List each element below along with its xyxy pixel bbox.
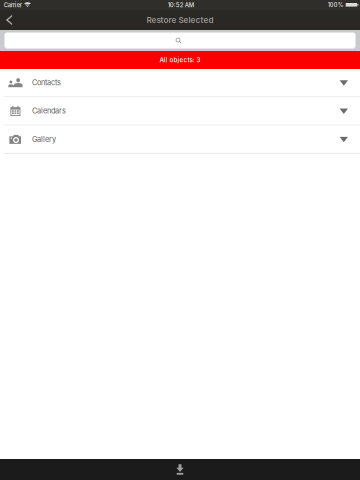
staticText: Carrier: [4, 1, 22, 9]
staticText: 100%: [328, 2, 344, 8]
button[interactable]: [0, 30, 360, 51]
staticText: Calendars: [32, 106, 66, 115]
button[interactable]: Download: [161, 459, 199, 480]
staticText: Contacts: [32, 78, 61, 87]
staticText: Restore Selected: [146, 15, 213, 25]
button[interactable]: Gallery: [0, 126, 360, 154]
staticText: 10:52 AM: [168, 1, 194, 9]
staticText: Gallery: [32, 135, 56, 144]
button[interactable]: Back: [0, 10, 26, 30]
button[interactable]: Calendars: [0, 97, 360, 126]
staticText: All objects: 3: [159, 56, 200, 64]
button[interactable]: Contacts: [0, 69, 360, 97]
